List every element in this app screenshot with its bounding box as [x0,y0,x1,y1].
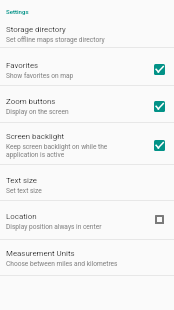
staticText: Settings [6,8,29,15]
button[interactable]: Favorites [0,48,174,85]
button[interactable]: Storage directory [0,15,174,47]
button[interactable]: Toggle Zoom buttons [154,101,165,112]
staticText: Display position always in center [6,223,102,231]
staticText: Show favorites on map [6,72,74,80]
staticText: Zoom buttons [6,97,56,106]
staticText: Text size [6,176,37,185]
button[interactable]: Toggle Location [155,215,165,224]
staticText: Choose between miles and kilometres [6,260,118,268]
staticText: Measurement Units [6,249,75,258]
staticText: Favorites [6,61,39,70]
staticText: Set offline maps storage directory [6,36,105,44]
button[interactable]: Screen backlight [0,123,174,164]
staticText: Keep screen backlight on while the appli… [6,143,141,159]
staticText: Set text size [6,187,42,195]
button[interactable]: Zoom buttons [0,86,174,122]
staticText: Display on the screen [6,108,69,116]
staticText: Screen backlight [6,132,65,141]
button[interactable]: Text size [0,165,174,200]
button[interactable]: Toggle Screen backlight [154,140,165,151]
staticText: Location [6,212,37,221]
button[interactable]: Toggle Favorites [154,64,165,75]
staticText: Storage directory [6,25,66,34]
button[interactable]: Location [0,201,174,239]
button[interactable]: Measurement Units [0,240,174,275]
